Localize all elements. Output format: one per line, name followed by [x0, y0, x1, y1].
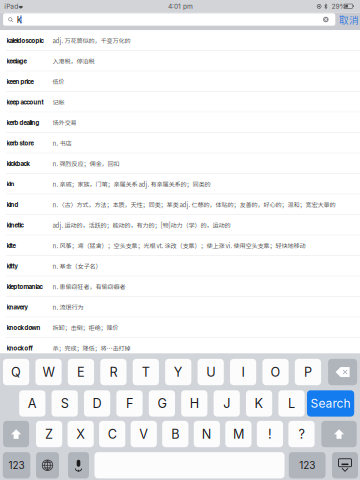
button[interactable]: S	[52, 390, 78, 417]
staticText: 4:01 pm	[168, 2, 193, 10]
button[interactable]: O	[262, 359, 289, 385]
button[interactable]: knavery	[0, 297, 360, 317]
button[interactable]: M	[225, 421, 251, 447]
staticText: n. 强烈反应；佣金，回扣	[52, 159, 119, 168]
button[interactable]: keelage	[0, 51, 360, 71]
staticText: W	[42, 364, 54, 380]
button[interactable]: Delete	[328, 359, 357, 385]
staticText: V	[139, 426, 148, 442]
button[interactable]: kind	[0, 194, 360, 215]
button[interactable]: R	[100, 359, 126, 385]
button[interactable]: kerb store	[0, 133, 360, 153]
staticText: kitty	[6, 262, 17, 270]
button[interactable]: W	[35, 359, 62, 385]
button[interactable]: D	[84, 390, 110, 417]
button[interactable]: A	[19, 390, 45, 417]
staticText: n. 患偷窃狂者，有偷窃癖者	[52, 282, 125, 291]
button[interactable]: kitty	[0, 256, 360, 276]
staticText: X	[76, 426, 85, 442]
button[interactable]: T	[133, 359, 159, 385]
button[interactable]: G	[149, 390, 175, 417]
button[interactable]: Switch keyboard	[36, 452, 59, 478]
button[interactable]: ?	[288, 421, 315, 447]
button[interactable]: !	[257, 421, 283, 447]
staticText: knock down	[6, 324, 40, 331]
staticText: n. 流氓行为	[52, 303, 83, 312]
staticText: Search	[311, 396, 351, 411]
button[interactable]: C	[99, 421, 125, 447]
staticText: n. 风筝；鸢（猛禽）；空头支票；光棍 vt. 涂改（支票）；使上涨 vi. 使…	[52, 241, 305, 250]
button[interactable]: 取消	[339, 13, 356, 26]
staticText: ?	[298, 426, 304, 442]
button[interactable]: keep account	[0, 92, 360, 112]
button[interactable]: kerb dealing	[0, 112, 360, 133]
button[interactable]: Q	[3, 359, 29, 385]
button[interactable]: Shift	[3, 421, 29, 447]
button[interactable]: L	[278, 390, 305, 417]
staticText: K	[255, 396, 264, 411]
staticText: P	[304, 364, 312, 380]
staticText: S	[61, 396, 69, 411]
button[interactable]: keen price	[0, 71, 360, 92]
staticText: 123	[299, 459, 315, 471]
button[interactable]: Search	[307, 390, 354, 417]
staticText: Q	[11, 364, 21, 380]
staticText: E	[77, 364, 85, 380]
staticText: B	[171, 426, 179, 442]
staticText: I	[242, 364, 245, 380]
staticText: N	[202, 426, 212, 442]
button[interactable]: E	[68, 359, 94, 385]
button[interactable]: Z	[36, 421, 62, 447]
button[interactable]: I	[230, 359, 256, 385]
button[interactable]: P	[295, 359, 321, 385]
staticText: R	[109, 364, 117, 380]
button[interactable]: N	[194, 421, 220, 447]
staticText: 场外交易	[52, 118, 76, 127]
button[interactable]: 123	[289, 452, 325, 478]
button[interactable]: kickback	[0, 153, 360, 174]
button[interactable]: J	[214, 390, 240, 417]
staticText: O	[270, 364, 280, 380]
staticText: C	[108, 426, 117, 442]
button[interactable]: X	[67, 421, 94, 447]
staticText: kite	[6, 242, 15, 249]
staticText: F	[126, 396, 133, 411]
staticText: J	[223, 396, 230, 411]
button[interactable]: U	[198, 359, 224, 385]
staticText: kin	[6, 180, 14, 188]
button[interactable]: 123	[3, 452, 30, 478]
button[interactable]: kin	[0, 174, 360, 194]
staticText: kerb store	[6, 139, 33, 147]
button[interactable]: knock off	[0, 338, 360, 358]
button[interactable]: Shift	[321, 421, 357, 447]
staticText: kerb dealing	[6, 119, 39, 126]
staticText: T	[142, 364, 150, 380]
button[interactable]: knock down	[0, 317, 360, 338]
button[interactable]: F	[116, 390, 143, 417]
staticText: 拆卸；击倒；拒绝；降价	[52, 323, 118, 332]
button[interactable]: Dictate	[68, 452, 89, 478]
staticText: knavery	[6, 303, 27, 311]
staticText: kind	[6, 201, 18, 208]
button[interactable]: B	[162, 421, 188, 447]
button[interactable]: Y	[165, 359, 191, 385]
staticText: Z	[45, 426, 53, 442]
staticText: kleptomaniac	[6, 283, 42, 290]
button[interactable]: kite	[0, 235, 360, 256]
button[interactable]: H	[181, 390, 207, 417]
button[interactable]: kaleidoscopic	[0, 30, 360, 51]
button[interactable]: V	[131, 421, 157, 447]
button[interactable]: Clear text	[323, 16, 329, 22]
staticText: 入港税，停泊税	[52, 57, 94, 66]
button[interactable]: kleptomaniac	[0, 276, 360, 297]
staticText: Y	[174, 364, 183, 380]
staticText: 123	[9, 459, 25, 471]
staticText: U	[206, 364, 215, 380]
button[interactable]: K	[246, 390, 272, 417]
staticText: 29%	[331, 2, 346, 10]
button[interactable]: kinetic	[0, 215, 360, 235]
button[interactable]: Hide keyboard	[332, 452, 358, 478]
staticText: adj. 运动的，活跃的；能动的，有力的；[物]动力（学）的，运动的	[52, 221, 230, 230]
staticText: n. 书店	[52, 139, 71, 148]
